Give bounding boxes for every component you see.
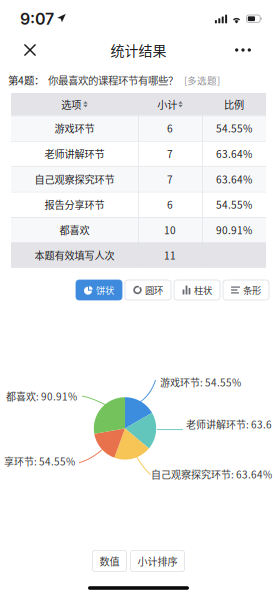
staticText: 63.64% <box>216 172 252 186</box>
staticText: 自己观察探究环节: 63.64% <box>151 467 272 481</box>
staticText: 10 <box>164 222 176 237</box>
staticText: 63.64% <box>216 146 252 161</box>
staticText: 7 <box>167 172 173 186</box>
staticText: 报告分享环节 <box>44 197 104 212</box>
button[interactable]: More options <box>228 35 258 65</box>
staticText: 老师讲解环节 <box>44 146 104 161</box>
button[interactable]: 小计排序 <box>130 550 184 571</box>
button[interactable]: 饼状 <box>76 280 122 300</box>
staticText: 6 <box>167 197 173 212</box>
staticText: 享环节: 54.55% <box>4 454 75 468</box>
staticText: 第4题： <box>8 72 44 88</box>
staticText: 圆环 <box>145 283 163 297</box>
button[interactable]: Close <box>15 35 45 65</box>
staticText: 自己观察探究环节 <box>34 172 114 186</box>
staticText: 90.91% <box>216 222 252 237</box>
staticText: 你最喜欢的课程环节有哪些？ <box>48 72 178 88</box>
button[interactable]: 圆环 <box>125 280 171 300</box>
staticText: 游戏环节: 54.55% <box>160 375 241 389</box>
button[interactable]: 数值 <box>92 550 126 571</box>
staticText: 都喜欢 <box>59 222 89 237</box>
staticText: 9:07 <box>20 9 54 29</box>
staticText: 统计结果 <box>110 40 166 60</box>
staticText: 柱状 <box>194 283 212 297</box>
staticText: 游戏环节 <box>54 121 94 136</box>
staticText: 小计 <box>157 97 177 112</box>
staticText: 都喜欢: 90.91% <box>6 389 77 403</box>
staticText: 老师讲解环节: 63.6 <box>186 417 272 431</box>
staticText: 本题有效填写人次 <box>34 248 114 263</box>
staticText: 7 <box>167 146 173 161</box>
staticText: 54.55% <box>216 121 252 136</box>
staticText: 条形 <box>243 283 261 297</box>
button[interactable]: 条形 <box>223 280 269 300</box>
staticText: 11 <box>164 248 176 263</box>
staticText: 选项 <box>61 97 81 112</box>
staticText: 6 <box>167 121 173 136</box>
staticText: 54.55% <box>216 197 252 212</box>
staticText: 数值 <box>99 554 119 568</box>
button[interactable]: 柱状 <box>174 280 220 300</box>
staticText: [多选题] <box>184 73 220 87</box>
staticText: 饼状 <box>96 283 114 297</box>
staticText: 比例 <box>224 97 244 112</box>
staticText: 小计排序 <box>137 554 177 568</box>
